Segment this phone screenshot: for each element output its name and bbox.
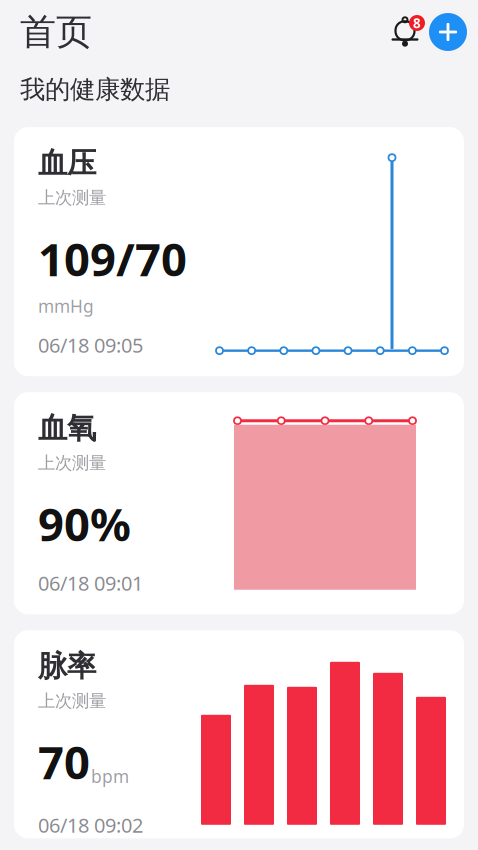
staticText: 109/70 <box>38 228 187 289</box>
staticText: 上次测量 <box>38 187 106 208</box>
staticText: 脉率 <box>38 648 96 684</box>
staticText: mmHg <box>38 295 94 318</box>
staticText: 70 <box>38 732 90 792</box>
staticText: 血压 <box>38 145 96 181</box>
button[interactable]: 添加 <box>426 10 470 54</box>
staticText: 06/18 09:05 <box>38 332 143 358</box>
button[interactable]: 血氧 <box>14 392 464 614</box>
staticText: 上次测量 <box>38 690 106 712</box>
staticText: 血氧 <box>38 410 96 446</box>
button[interactable]: 血压 <box>14 127 464 376</box>
staticText: 8 <box>413 14 421 32</box>
staticText: 06/18 09:02 <box>38 812 143 838</box>
staticText: 首页 <box>20 10 92 54</box>
staticText: bpm <box>91 765 129 788</box>
staticText: 06/18 09:01 <box>38 570 143 596</box>
staticText: 我的健康数据 <box>20 74 170 105</box>
staticText: 90% <box>38 493 131 554</box>
button[interactable]: 脉率 <box>14 630 464 838</box>
button[interactable]: 通知 <box>384 14 426 50</box>
staticText: 上次测量 <box>38 452 106 473</box>
